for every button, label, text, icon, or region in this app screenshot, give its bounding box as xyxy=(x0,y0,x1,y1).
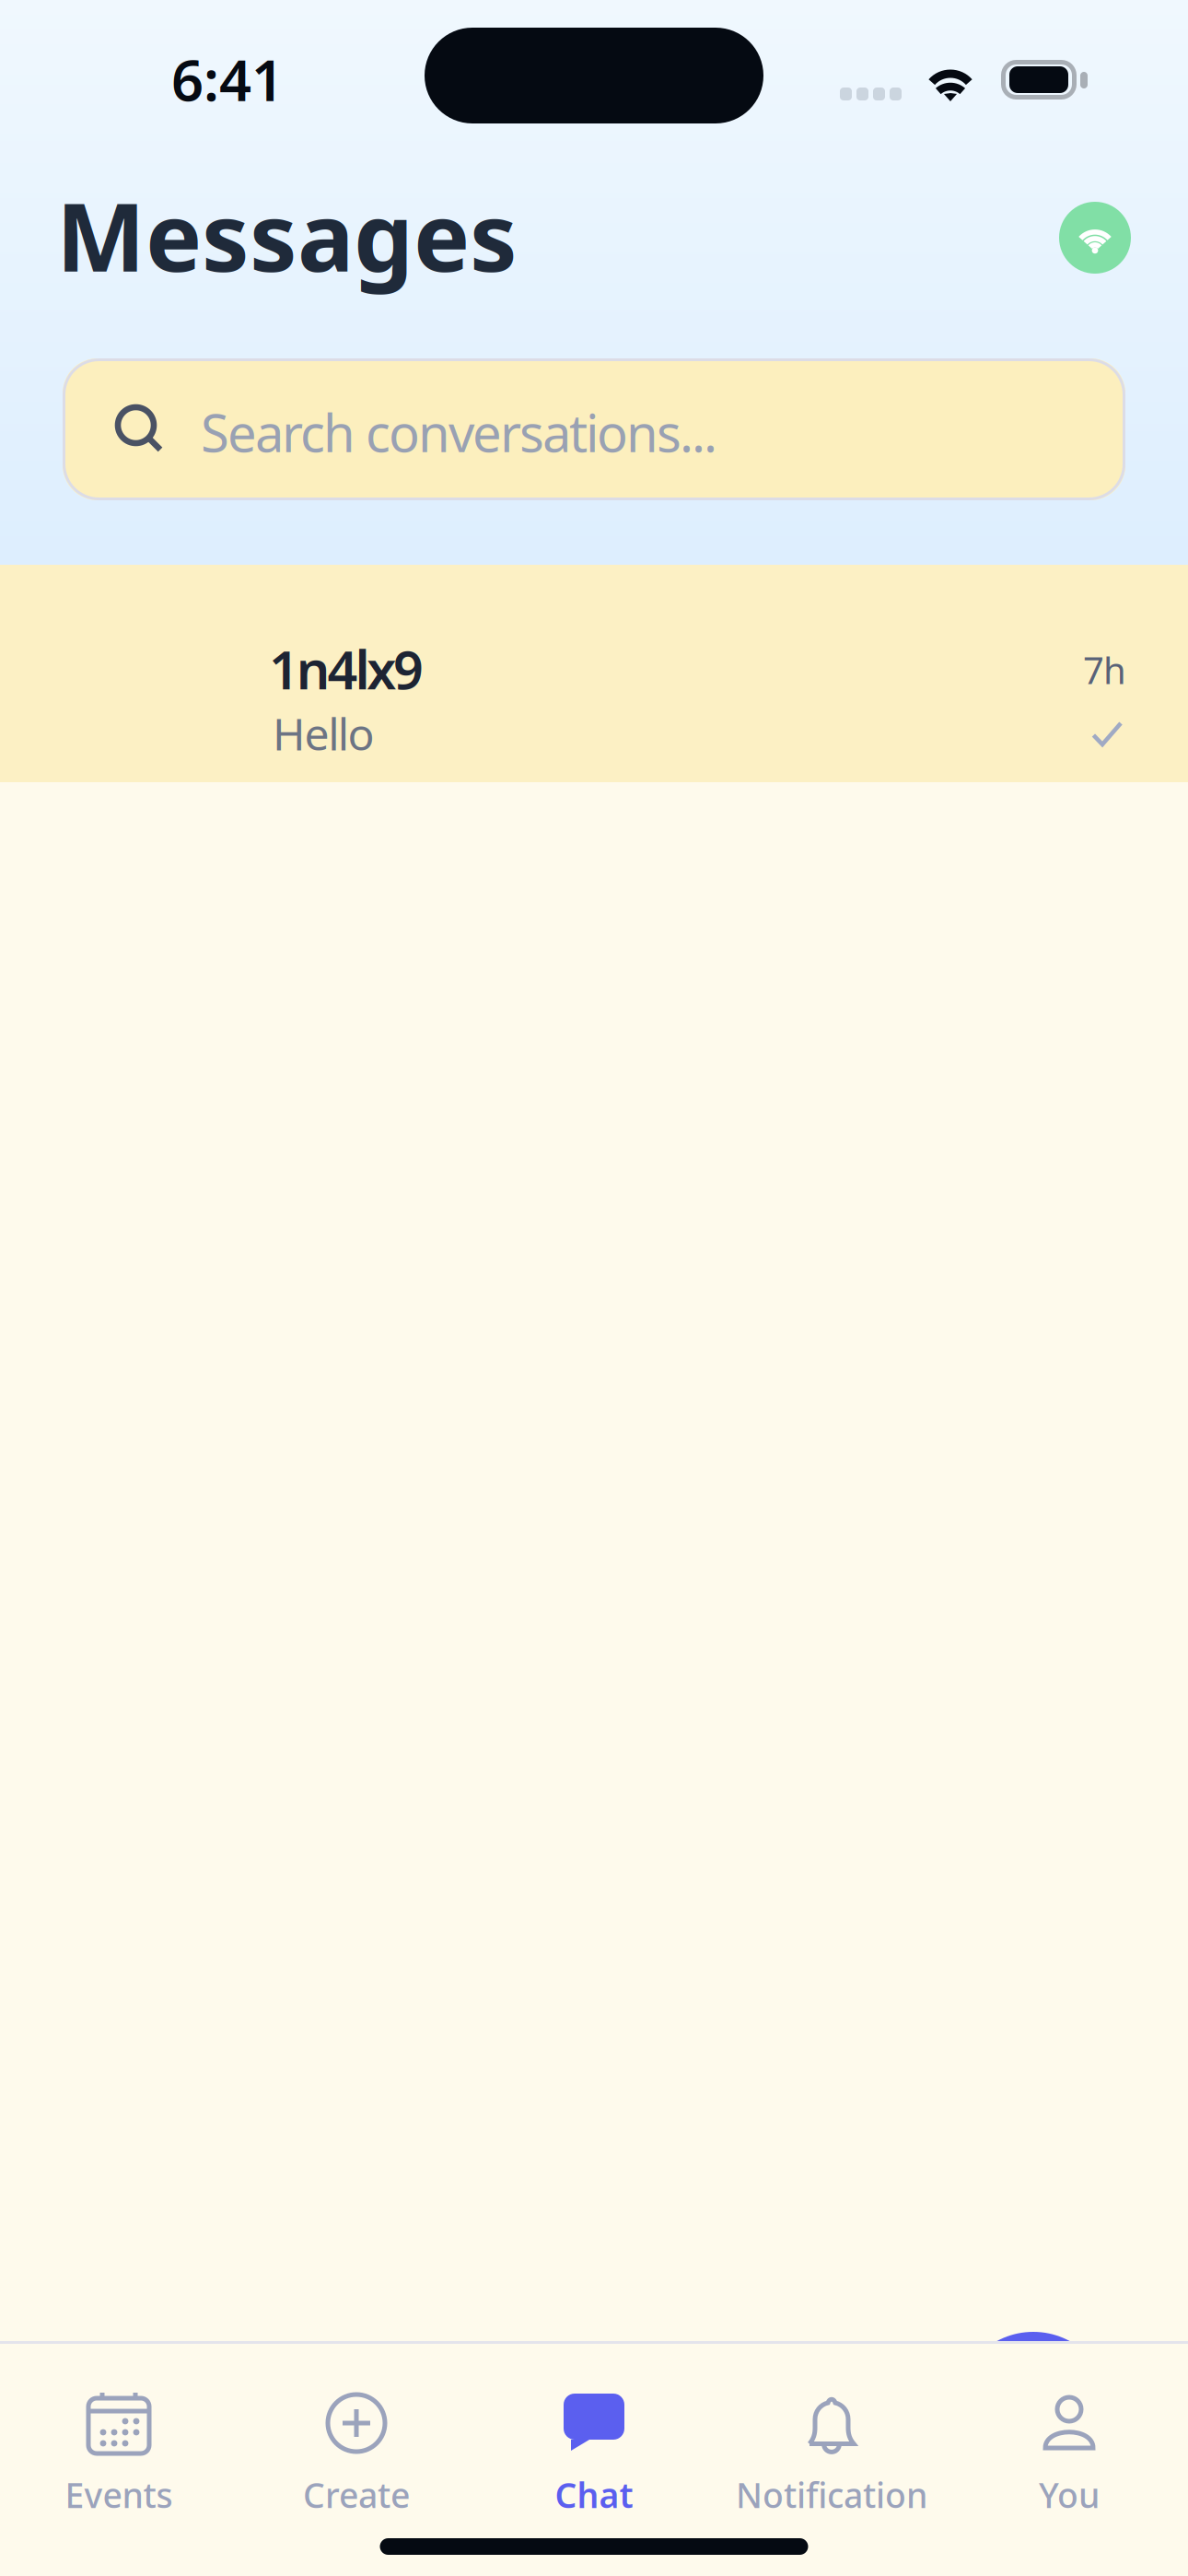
staticText: Messages xyxy=(56,172,518,298)
button[interactable]: Notification xyxy=(713,2341,950,2576)
button[interactable]: Chat xyxy=(475,2341,713,2576)
staticText: Hello xyxy=(273,704,374,763)
button[interactable]: Create xyxy=(238,2341,475,2576)
button[interactable]: 1n4lx9 xyxy=(0,565,1188,782)
staticText: 1n4lx9 xyxy=(269,634,424,704)
button[interactable]: Events xyxy=(0,2341,238,2576)
staticText: Search conversations... xyxy=(201,398,717,466)
staticText: You xyxy=(1039,2472,1100,2518)
staticText: Chat xyxy=(555,2472,633,2518)
staticText: Events xyxy=(65,2472,173,2518)
staticText: Create xyxy=(303,2472,410,2518)
staticText: Notification xyxy=(736,2472,927,2518)
staticText: 6:41 xyxy=(171,42,284,117)
button[interactable]: Search conversations... xyxy=(63,358,1125,500)
button[interactable]: Network status xyxy=(1059,202,1131,274)
button[interactable]: You xyxy=(950,2341,1188,2576)
staticText: 7h xyxy=(1083,645,1126,694)
